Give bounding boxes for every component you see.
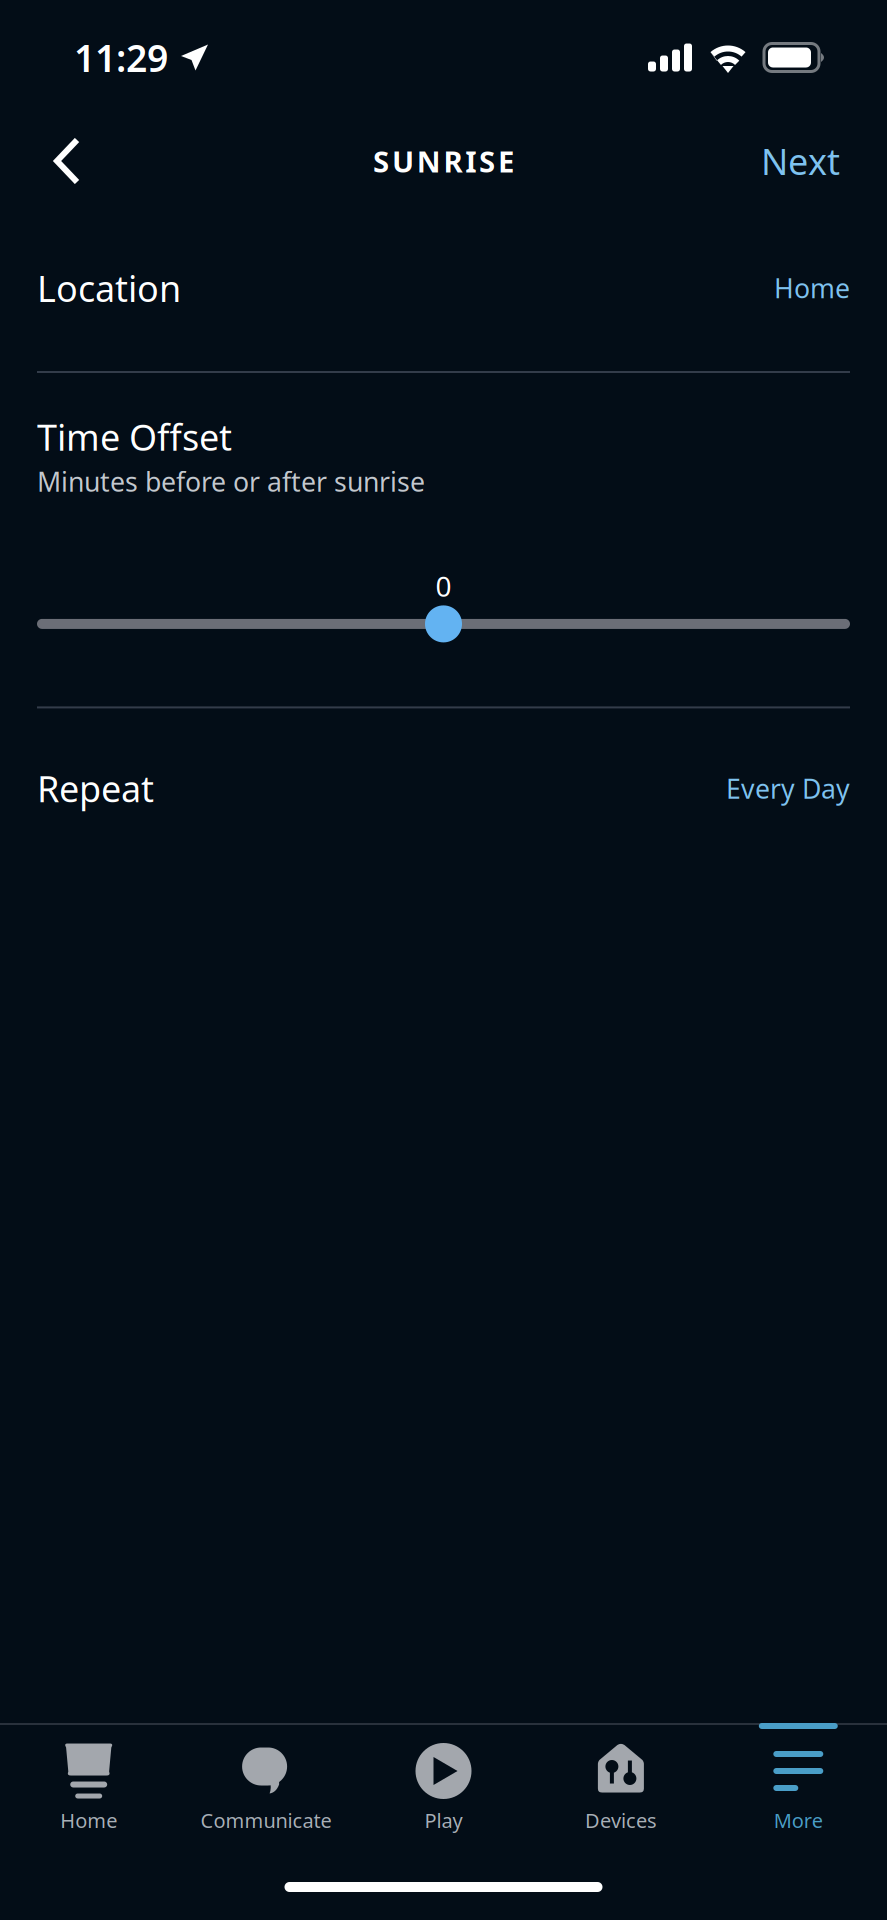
staticText: Communicate — [201, 1807, 332, 1834]
staticText: More — [774, 1807, 823, 1834]
staticText: Every Day — [726, 771, 850, 806]
staticText: Location — [37, 264, 181, 312]
staticText: Next — [761, 137, 840, 185]
staticText: Play — [424, 1807, 462, 1834]
staticText: 0 — [435, 567, 451, 604]
button[interactable]: Next — [727, 115, 887, 207]
button[interactable]: Devices — [532, 1729, 710, 1847]
button[interactable]: Home — [0, 1729, 177, 1847]
button[interactable]: Communicate — [177, 1729, 355, 1847]
staticText: SUNRISE — [373, 141, 514, 180]
button[interactable]: Repeat — [0, 768, 887, 808]
button[interactable]: Play — [355, 1729, 532, 1847]
staticText: Home — [774, 270, 850, 306]
staticText: Repeat — [37, 764, 154, 812]
button[interactable]: Location — [0, 259, 887, 317]
staticText: Minutes before or after sunrise — [37, 464, 425, 499]
staticText: 11:29 — [74, 33, 168, 82]
button[interactable]: More — [710, 1729, 887, 1847]
button[interactable]: Back — [0, 115, 115, 207]
staticText: Home — [60, 1807, 117, 1834]
staticText: Time Offset — [37, 413, 232, 461]
staticText: Devices — [585, 1807, 657, 1834]
